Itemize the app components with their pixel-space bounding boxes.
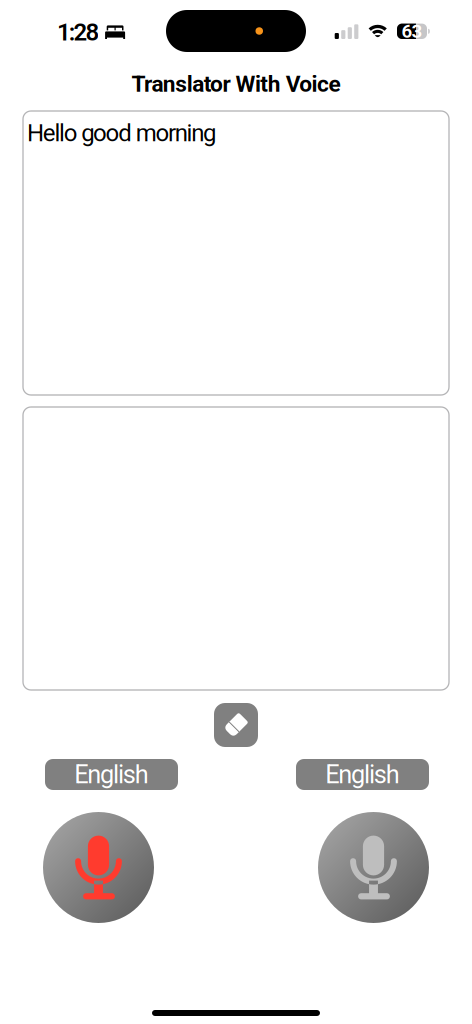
staticText: Translator With Voice (131, 71, 340, 97)
staticText: English (325, 760, 400, 789)
staticText: Hello good morning (27, 119, 216, 147)
staticText: 1:28 (57, 18, 99, 46)
button[interactable]: Clear text (214, 703, 258, 747)
button[interactable]: English (296, 759, 429, 790)
staticText: 63 (401, 20, 423, 42)
button[interactable]: English (45, 759, 178, 790)
button[interactable]: Speak target language (318, 812, 429, 923)
staticText: English (74, 760, 149, 789)
button[interactable]: Speak source language (43, 812, 154, 923)
